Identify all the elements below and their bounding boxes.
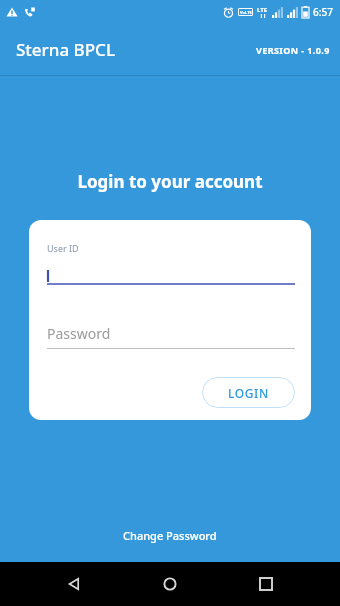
button[interactable]: Recent apps	[244, 562, 288, 606]
button[interactable]: Change Password	[115, 524, 225, 547]
button[interactable]: Home	[148, 562, 192, 606]
staticText: VERSION - 1.0.9	[256, 44, 330, 56]
staticText: Password	[47, 324, 111, 343]
staticText: Sterna BPCL	[16, 38, 115, 61]
button[interactable]: LOGIN	[202, 377, 295, 408]
staticText: LTE	[257, 6, 268, 14]
button[interactable]: Password	[47, 324, 295, 349]
staticText: Login to your account	[0, 170, 340, 193]
button[interactable]	[47, 268, 295, 284]
staticText: VoLTE	[240, 10, 252, 15]
staticText: Change Password	[123, 528, 217, 543]
staticText: 6:57	[313, 5, 333, 19]
button[interactable]: Back	[52, 562, 96, 606]
staticText: LOGIN	[228, 385, 269, 401]
staticText: User ID	[47, 242, 79, 254]
